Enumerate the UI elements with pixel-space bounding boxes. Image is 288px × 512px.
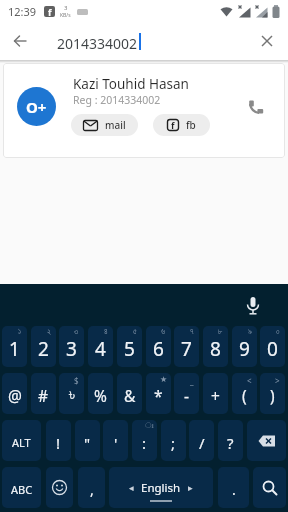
button[interactable]: (: [232, 373, 257, 414]
staticText: ৮: [218, 328, 223, 336]
staticText: @: [8, 385, 22, 406]
staticText: ▸: [188, 483, 193, 493]
staticText: KB/s: [60, 12, 71, 19]
button[interactable]: :: [132, 420, 157, 461]
staticText: 0: [267, 336, 278, 362]
staticText: ): [270, 385, 275, 406]
staticText: ০: [276, 328, 280, 336]
staticText: Reg : 2014334002: [73, 93, 161, 107]
staticText: +: [211, 385, 220, 406]
staticText: ৬: [161, 328, 166, 336]
staticText: Kazi Touhid Hasan: [73, 75, 189, 93]
staticText: :: [142, 433, 147, 453]
button[interactable]: -: [174, 373, 199, 414]
button[interactable]: /: [189, 420, 214, 461]
staticText: 2014334002: [57, 34, 138, 53]
staticText: ৳: [69, 388, 75, 404]
button[interactable]: ": [75, 420, 100, 461]
staticText: ঃ: [145, 422, 154, 430]
button[interactable]: [247, 420, 286, 461]
staticText: _: [190, 375, 194, 386]
staticText: -: [184, 385, 189, 406]
staticText: ABC: [11, 482, 33, 497]
button[interactable]: !: [46, 420, 71, 461]
staticText: ': [114, 433, 118, 453]
staticText: 1: [9, 336, 20, 362]
button[interactable]: 8: [203, 326, 228, 367]
staticText: ◂: [129, 483, 134, 493]
staticText: *: [154, 385, 163, 406]
button[interactable]: @: [2, 373, 27, 414]
button[interactable]: &: [117, 373, 142, 414]
staticText: ৯: [248, 328, 252, 336]
staticText: ৭: [190, 328, 194, 336]
button[interactable]: %: [88, 373, 113, 414]
staticText: ২: [47, 328, 51, 336]
button[interactable]: 9: [232, 326, 257, 367]
staticText: 12:39: [8, 4, 37, 19]
button[interactable]: 6: [146, 326, 171, 367]
staticText: %: [94, 385, 107, 406]
button[interactable]: ,: [78, 467, 105, 508]
button[interactable]: [46, 467, 73, 508]
button[interactable]: *: [146, 373, 171, 414]
staticText: /: [199, 433, 205, 453]
button[interactable]: [253, 467, 286, 508]
staticText: ": [84, 433, 91, 453]
staticText: !: [56, 433, 61, 453]
button[interactable]: 2: [31, 326, 56, 367]
button[interactable]: [261, 35, 273, 47]
staticText: &: [124, 385, 136, 406]
button[interactable]: 1: [2, 326, 27, 367]
staticText: 9: [239, 336, 250, 362]
button[interactable]: ;: [161, 420, 186, 461]
staticText: ,: [90, 480, 94, 499]
button[interactable]: ': [103, 420, 128, 461]
staticText: ৪: [104, 328, 108, 336]
staticText: ;: [171, 433, 176, 453]
staticText: mail: [105, 118, 126, 132]
staticText: (: [242, 385, 247, 406]
staticText: 4: [95, 336, 106, 362]
button[interactable]: [246, 297, 260, 316]
button[interactable]: 3: [59, 326, 84, 367]
staticText: 8: [210, 336, 221, 362]
staticText: English: [141, 480, 181, 496]
staticText: 7: [181, 336, 192, 362]
staticText: 3: [66, 336, 77, 362]
staticText: $: [74, 375, 79, 386]
button[interactable]: f: [153, 114, 210, 136]
button[interactable]: ৳: [59, 373, 84, 414]
button[interactable]: 0: [260, 326, 285, 367]
button[interactable]: #: [31, 373, 56, 414]
button[interactable]: ALT: [2, 420, 41, 461]
button[interactable]: 7: [174, 326, 199, 367]
staticText: 2: [38, 336, 49, 362]
staticText: >: [275, 375, 280, 386]
staticText: .: [232, 480, 236, 499]
button[interactable]: ?: [218, 420, 243, 461]
staticText: <: [247, 375, 252, 386]
button[interactable]: 4: [88, 326, 113, 367]
staticText: ১: [18, 328, 22, 336]
staticText: ?: [227, 433, 234, 453]
button[interactable]: [248, 100, 263, 115]
staticText: f: [171, 119, 175, 131]
staticText: f: [48, 6, 52, 17]
staticText: #: [38, 385, 49, 406]
button[interactable]: ): [260, 373, 285, 414]
button[interactable]: +: [203, 373, 228, 414]
staticText: ALT: [12, 435, 31, 450]
staticText: 5: [124, 336, 135, 362]
button[interactable]: [14, 35, 27, 48]
staticText: 6: [153, 336, 164, 362]
staticText: ৫: [133, 328, 137, 336]
button[interactable]: ABC: [2, 467, 41, 508]
staticText: ★: [160, 375, 168, 384]
staticText: fb: [186, 118, 196, 132]
button[interactable]: O+: [3, 63, 285, 158]
button[interactable]: .: [218, 467, 249, 508]
button[interactable]: ◂: [109, 467, 213, 508]
button[interactable]: 5: [117, 326, 142, 367]
button[interactable]: mail: [71, 114, 138, 136]
